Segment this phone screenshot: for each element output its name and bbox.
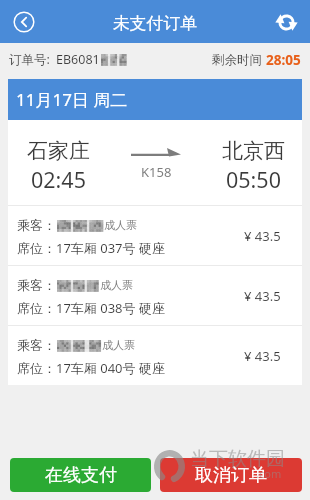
staticText: 乘客： xyxy=(17,277,56,293)
staticText: K158 xyxy=(141,163,172,181)
staticText: 北京西 xyxy=(222,138,285,164)
staticText: 05:50 xyxy=(226,165,281,194)
staticText: 席位：17车厢 040号 硬座 xyxy=(17,359,165,377)
staticText: 11月17日 周二 xyxy=(16,88,128,111)
staticText: 取消订单 xyxy=(195,464,267,487)
staticText: ¥ 43.5 xyxy=(244,347,281,365)
staticText: ¥ 43.5 xyxy=(244,227,281,245)
staticText: 成人票 xyxy=(100,278,133,292)
staticText: 02:45 xyxy=(31,165,86,194)
staticText: 在线支付 xyxy=(45,464,117,487)
staticText: EB6081 xyxy=(56,51,100,68)
staticText: 剩余时间 xyxy=(212,51,266,68)
staticText: .com xyxy=(256,466,282,481)
staticText: 席位：17车厢 038号 硬座 xyxy=(17,299,165,317)
staticText: 成人票 xyxy=(102,338,135,352)
staticText: 当下软件园 xyxy=(190,447,285,471)
staticText: 乘客： xyxy=(17,217,56,233)
button[interactable]: 乘客： xyxy=(8,326,302,385)
staticText: 未支付订单 xyxy=(113,13,197,34)
staticText: ¥ 43.5 xyxy=(244,287,281,305)
button[interactable]: Back xyxy=(8,6,40,38)
button[interactable]: 乘客： xyxy=(8,266,302,325)
staticText: 石家庄 xyxy=(27,138,90,164)
staticText: 成人票 xyxy=(104,218,137,232)
button[interactable]: Refresh xyxy=(270,6,302,38)
button[interactable]: 乘客： xyxy=(8,206,302,265)
staticText: 订单号: xyxy=(9,51,50,68)
staticText: 席位：17车厢 037号 硬座 xyxy=(17,239,165,257)
staticText: 乘客： xyxy=(17,337,56,353)
button[interactable]: 取消订单 xyxy=(160,458,302,492)
button[interactable]: 在线支付 xyxy=(10,458,151,492)
staticText: 28:05 xyxy=(266,51,301,69)
